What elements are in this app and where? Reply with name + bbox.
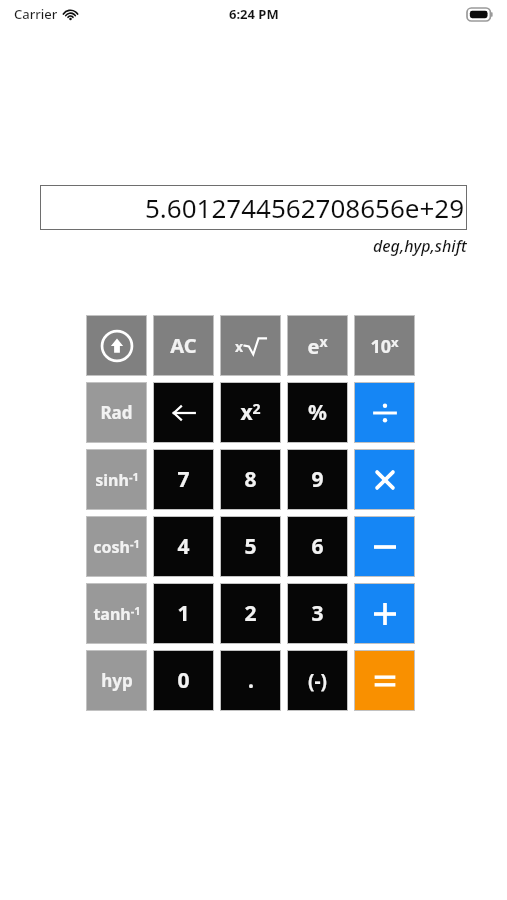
staticText: cosh-1: [93, 536, 140, 558]
staticText: 7: [177, 465, 190, 494]
staticText: x: [235, 337, 244, 356]
button[interactable]: cosh inverse: [86, 516, 147, 577]
staticText: deg,hyp,shift: [373, 235, 467, 257]
button[interactable]: .: [220, 650, 281, 711]
staticText: (-): [308, 668, 327, 694]
staticText: ex: [307, 332, 328, 360]
button[interactable]: x squared: [220, 382, 281, 443]
button[interactable]: Shift: [86, 315, 147, 376]
button[interactable]: 6: [287, 516, 348, 577]
staticText: 8: [244, 465, 257, 494]
button[interactable]: 0: [153, 650, 214, 711]
button[interactable]: 10 to the x: [354, 315, 415, 376]
staticText: Rad: [100, 401, 133, 424]
staticText: 3: [311, 599, 324, 628]
button[interactable]: 8: [220, 449, 281, 510]
staticText: 2: [244, 599, 257, 628]
button[interactable]: hyp: [86, 650, 147, 711]
staticText: 6: [311, 532, 324, 561]
button[interactable]: Plus: [354, 583, 415, 644]
staticText: 5.6012744562708656e+29: [145, 190, 465, 225]
staticText: tanh-1: [93, 603, 141, 625]
staticText: hyp: [101, 669, 133, 692]
staticText: 10x: [370, 333, 399, 358]
staticText: 5: [244, 532, 257, 561]
button[interactable]: AC: [153, 315, 214, 376]
button[interactable]: 4: [153, 516, 214, 577]
staticText: AC: [170, 332, 197, 359]
staticText: sinh-1: [95, 469, 139, 491]
staticText: 6:24 PM: [229, 5, 279, 23]
staticText: 0: [177, 666, 190, 695]
staticText: %: [308, 398, 327, 427]
button[interactable]: sinh inverse: [86, 449, 147, 510]
button[interactable]: 1: [153, 583, 214, 644]
button[interactable]: (-): [287, 650, 348, 711]
button[interactable]: 5.6012744562708656e+29: [40, 185, 467, 230]
button[interactable]: Backspace: [153, 382, 214, 443]
button[interactable]: Equals: [354, 650, 415, 711]
button[interactable]: 9: [287, 449, 348, 510]
button[interactable]: %: [287, 382, 348, 443]
staticText: Carrier: [14, 5, 58, 23]
button[interactable]: Rad: [86, 382, 147, 443]
button[interactable]: 2: [220, 583, 281, 644]
button[interactable]: Minus: [354, 516, 415, 577]
button[interactable]: tanh inverse: [86, 583, 147, 644]
staticText: 9: [311, 465, 324, 494]
button[interactable]: 3: [287, 583, 348, 644]
button[interactable]: 5: [220, 516, 281, 577]
button[interactable]: 7: [153, 449, 214, 510]
staticText: .: [248, 666, 254, 695]
staticText: x2: [240, 398, 261, 427]
button[interactable]: x root: [220, 315, 281, 376]
button[interactable]: Divide: [354, 382, 415, 443]
button[interactable]: Multiply: [354, 449, 415, 510]
button[interactable]: e to the x: [287, 315, 348, 376]
staticText: 4: [177, 532, 190, 561]
staticText: 1: [177, 599, 190, 628]
